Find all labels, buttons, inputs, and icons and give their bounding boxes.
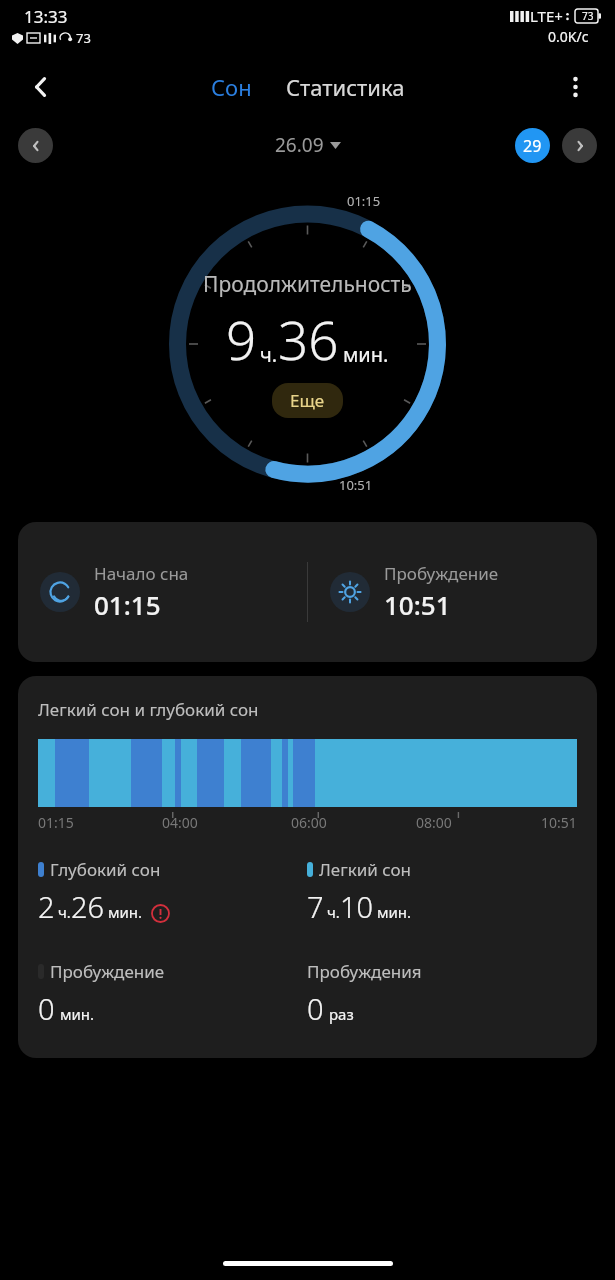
staticText: 10:51 <box>384 587 451 622</box>
staticText: 0 <box>38 989 55 1028</box>
staticText: 0.0K/c <box>548 27 589 46</box>
staticText: ч. <box>58 902 71 922</box>
staticText: Глубокий сон <box>50 858 161 881</box>
button[interactable]: Глубокий сон <box>38 858 307 926</box>
button[interactable]: Легкий сон <box>307 858 577 926</box>
staticText: Статистика <box>286 72 405 102</box>
staticText: 73 <box>76 29 91 47</box>
staticText: 9 <box>226 303 257 375</box>
button[interactable]: Previous day <box>18 128 53 163</box>
staticText: ч. <box>260 341 278 368</box>
staticText: Пробуждение <box>384 562 499 585</box>
button[interactable]: Пробуждение <box>308 522 597 662</box>
staticText: раз <box>329 1004 354 1024</box>
button[interactable]: Сон <box>205 66 258 108</box>
staticText: 2 <box>38 887 55 926</box>
staticText: LTE+ <box>530 6 563 26</box>
staticText: Легкий сон и глубокий сон <box>38 698 259 721</box>
staticText: 10:51 <box>339 476 373 494</box>
staticText: 29 <box>523 135 542 157</box>
staticText: мин. <box>343 341 389 368</box>
staticText: 13:33 <box>24 5 68 28</box>
staticText: 7 <box>307 887 324 926</box>
staticText: Начало сна <box>94 562 189 585</box>
button[interactable]: Пробуждения <box>307 960 577 1028</box>
staticText: 01:15 <box>347 192 381 210</box>
staticText: 26.09 <box>275 132 324 158</box>
staticText: Легкий сон <box>319 858 411 881</box>
staticText: 10:51 <box>541 813 577 832</box>
staticText: Продолжительность <box>203 270 412 299</box>
button[interactable]: Начало сна <box>18 522 307 662</box>
staticText: мин. <box>377 902 412 922</box>
staticText: Пробуждения <box>307 960 422 983</box>
staticText: 01:15 <box>94 587 161 622</box>
staticText: Сон <box>211 72 252 102</box>
button[interactable]: More options <box>553 65 597 109</box>
staticText: 08:00 <box>416 813 452 832</box>
staticText: 73 <box>582 9 594 23</box>
staticText: ч. <box>327 902 340 922</box>
staticText: мин. <box>60 1004 95 1024</box>
staticText: 10 <box>340 887 374 926</box>
button[interactable]: Back <box>18 64 64 110</box>
staticText: Пробуждение <box>50 960 165 983</box>
button[interactable]: 26.09 <box>267 126 349 164</box>
button[interactable]: Статистика <box>280 66 411 108</box>
staticText: 26 <box>71 887 105 926</box>
staticText: 04:00 <box>162 813 198 832</box>
button[interactable]: Пробуждение <box>38 960 307 1028</box>
staticText: 06:00 <box>291 813 327 832</box>
button[interactable]: Next day <box>562 128 597 163</box>
button[interactable]: Еще <box>272 383 343 418</box>
staticText: 36 <box>278 303 339 375</box>
staticText: 01:15 <box>38 813 74 832</box>
staticText: мин. <box>108 902 143 922</box>
staticText: Еще <box>290 389 325 412</box>
staticText: 0 <box>307 989 324 1028</box>
button[interactable]: 29 <box>515 128 550 163</box>
